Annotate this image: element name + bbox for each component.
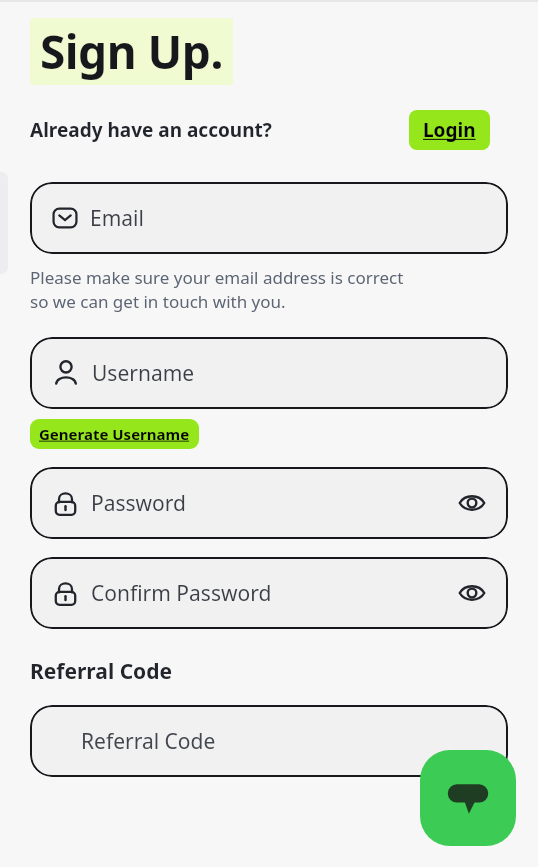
button[interactable]: Username — [30, 337, 508, 409]
button[interactable]: Referral Code — [30, 705, 508, 777]
staticText: Confirm Password — [91, 579, 458, 608]
button[interactable]: Login — [409, 110, 490, 150]
other: Email — [52, 205, 78, 231]
staticText: Please make sure your email address is c… — [30, 266, 404, 313]
button[interactable]: Email — [30, 182, 508, 254]
staticText: Sign Up. — [40, 20, 223, 83]
staticText: Referral Code — [30, 657, 173, 686]
button[interactable]: Confirm password — [30, 557, 508, 629]
button[interactable]: Open chat support — [420, 750, 516, 846]
button[interactable]: Password — [30, 467, 508, 539]
staticText: Referral Code — [81, 727, 486, 756]
other: Password — [52, 490, 79, 517]
staticText: Password — [91, 489, 458, 518]
staticText: Email — [90, 204, 486, 233]
staticText: Username — [92, 359, 486, 388]
staticText: Already have an account? — [30, 117, 272, 143]
button[interactable]: Generate Username — [30, 419, 199, 449]
other: Username — [52, 359, 80, 387]
staticText: Login — [423, 117, 476, 143]
staticText: Generate Username — [39, 424, 190, 444]
other: Confirm password — [52, 580, 79, 607]
button[interactable]: Toggle password visibility — [458, 579, 486, 607]
button[interactable]: Toggle password visibility — [458, 489, 486, 517]
